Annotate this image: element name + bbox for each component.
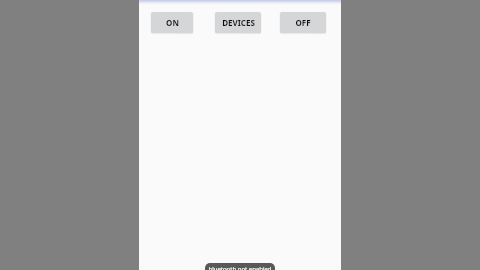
staticText: bluetooth not enabled: [208, 265, 272, 270]
staticText: OFF: [295, 17, 311, 28]
staticText: DEVICES: [222, 17, 255, 28]
button[interactable]: OFF: [280, 12, 326, 33]
button[interactable]: DEVICES: [215, 12, 261, 33]
button[interactable]: ON: [151, 12, 193, 33]
staticText: ON: [166, 17, 179, 28]
